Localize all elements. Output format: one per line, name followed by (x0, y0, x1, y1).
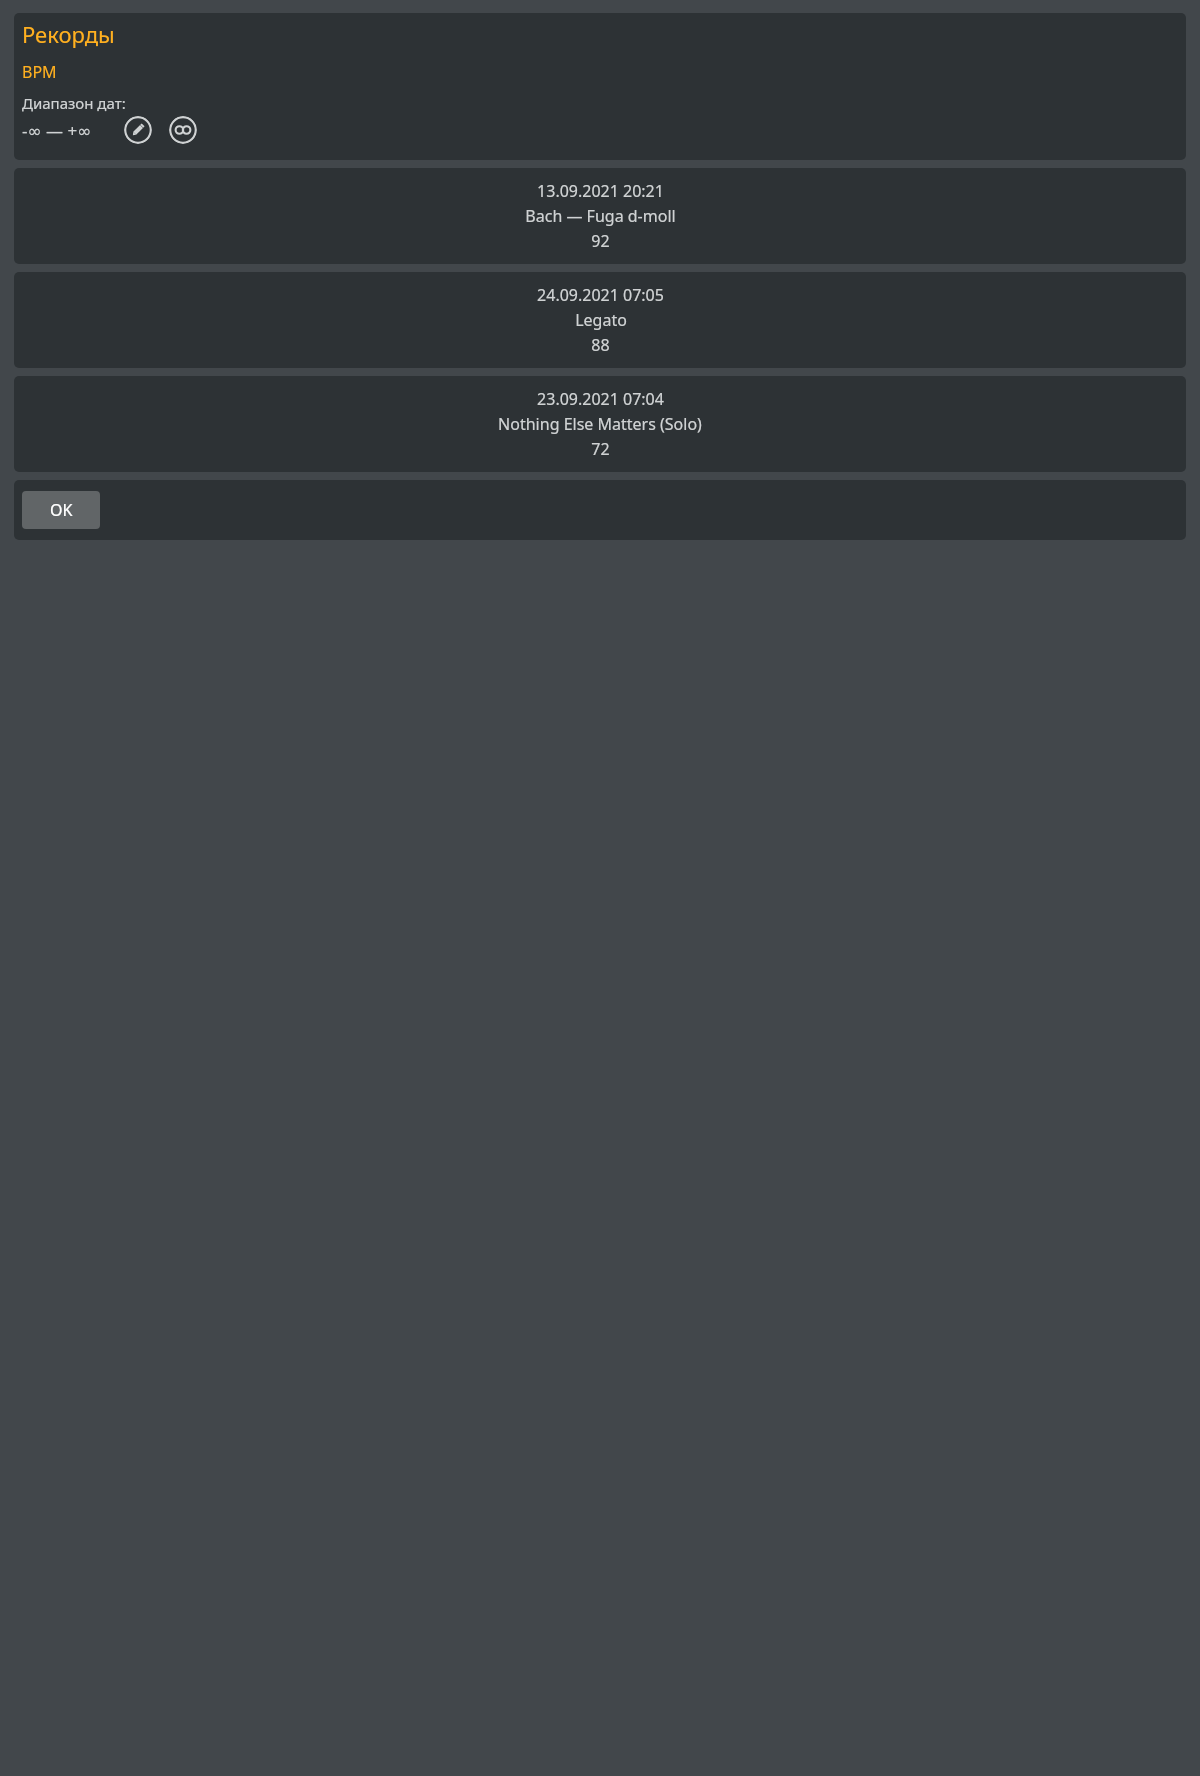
staticText: 23.09.2021 07:04 (537, 388, 664, 410)
staticText: BPM (22, 61, 57, 83)
button[interactable]: Reset date range to infinity (169, 116, 197, 144)
staticText: Bach — Fuga d-moll (525, 205, 676, 227)
staticText: Nothing Else Matters (Solo) (498, 413, 702, 435)
staticText: 24.09.2021 07:05 (537, 284, 664, 306)
button[interactable]: 24.09.2021 07:05 (14, 272, 1186, 368)
staticText: 88 (591, 334, 610, 356)
staticText: Диапазон дат: (22, 93, 126, 113)
button[interactable]: OK (22, 491, 100, 529)
staticText: 13.09.2021 20:21 (537, 180, 664, 202)
button[interactable]: Edit date range (124, 116, 152, 144)
staticText: Legato (575, 309, 627, 331)
button[interactable]: 13.09.2021 20:21 (14, 168, 1186, 264)
staticText: 72 (591, 438, 610, 460)
staticText: OK (50, 499, 73, 521)
button[interactable]: 23.09.2021 07:04 (14, 376, 1186, 472)
staticText: Рекорды (22, 19, 115, 49)
staticText: 92 (591, 230, 610, 252)
staticText: -∞ — +∞ (22, 119, 92, 142)
